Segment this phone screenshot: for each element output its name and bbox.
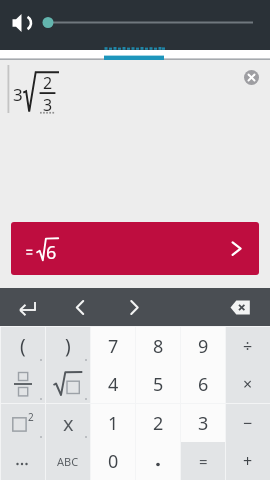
staticText: 0	[108, 449, 119, 474]
button[interactable]: (	[1, 327, 45, 365]
button[interactable]: =	[181, 442, 225, 480]
button[interactable]: x	[46, 404, 90, 442]
staticText: 2	[43, 72, 53, 94]
button[interactable]: 6	[181, 365, 225, 403]
button[interactable]: +	[226, 442, 270, 480]
button[interactable]	[46, 365, 90, 403]
button[interactable]: −	[226, 404, 270, 442]
staticText: 5	[153, 372, 164, 397]
staticText: 7	[108, 334, 119, 359]
button[interactable]: 4	[91, 365, 135, 403]
staticText: 3	[13, 83, 23, 106]
button[interactable]: ×	[226, 365, 270, 403]
staticText: 9	[198, 334, 209, 359]
staticText: )	[65, 333, 71, 359]
staticText: 2	[28, 410, 34, 424]
staticText: 2	[153, 411, 164, 436]
button[interactable]: 5	[136, 365, 180, 403]
staticText: 4	[108, 372, 119, 397]
button[interactable]: 6	[11, 222, 259, 275]
button[interactable]: 9	[181, 327, 225, 365]
staticText: 3	[43, 94, 53, 116]
button[interactable]: 2	[136, 404, 180, 442]
button[interactable]	[1, 365, 45, 403]
staticText: (	[20, 333, 26, 359]
button[interactable]: 3	[181, 404, 225, 442]
staticText: ×	[243, 373, 253, 395]
staticText: 1	[108, 411, 119, 436]
staticText: ABC	[57, 454, 79, 469]
button[interactable]	[1, 442, 45, 480]
button[interactable]	[162, 288, 270, 326]
staticText: =	[199, 451, 208, 471]
button[interactable]: ÷	[226, 327, 270, 365]
staticText: 6	[198, 372, 209, 397]
button[interactable]	[136, 442, 180, 480]
button[interactable]: )	[46, 327, 90, 365]
button[interactable]: ABC	[46, 442, 90, 480]
button[interactable]: 7	[91, 327, 135, 365]
staticText: 8	[153, 334, 164, 359]
staticText: −	[243, 412, 253, 434]
staticText: +	[243, 450, 253, 472]
button[interactable]: 2	[1, 404, 45, 442]
button[interactable]	[108, 288, 162, 326]
button[interactable]	[54, 288, 108, 326]
button[interactable]	[0, 288, 54, 326]
button[interactable]: 8	[136, 327, 180, 365]
button[interactable]	[244, 70, 259, 85]
button[interactable]: 0	[91, 442, 135, 480]
staticText: 6	[46, 240, 57, 265]
staticText: ÷	[243, 335, 253, 357]
staticText: x	[63, 410, 74, 437]
staticText: 3	[198, 411, 209, 436]
button[interactable]: 1	[91, 404, 135, 442]
